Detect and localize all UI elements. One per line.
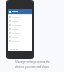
button[interactable] bbox=[8, 35, 32, 39]
staticText: devices you own and share bbox=[15, 65, 49, 69]
button[interactable] bbox=[8, 27, 32, 31]
button[interactable] bbox=[8, 15, 32, 19]
button[interactable] bbox=[8, 31, 32, 35]
button[interactable] bbox=[8, 23, 32, 27]
button[interactable]: Menu bbox=[8, 9, 32, 14]
button[interactable] bbox=[8, 19, 32, 23]
button[interactable] bbox=[8, 39, 32, 43]
staticText: Manage settings across the bbox=[15, 60, 50, 64]
